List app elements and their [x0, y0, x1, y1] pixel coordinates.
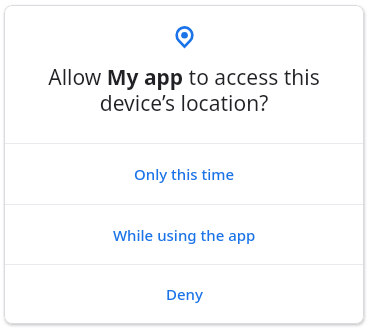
- button[interactable]: Deny: [4, 265, 364, 323]
- button[interactable]: Only this time: [4, 144, 364, 204]
- staticText: Only this time: [134, 164, 235, 184]
- staticText: Deny: [166, 284, 203, 304]
- button[interactable]: While using the app: [4, 205, 364, 264]
- staticText: While using the app: [113, 225, 256, 245]
- staticText: Allow My app to access this device’s loc…: [4, 63, 364, 118]
